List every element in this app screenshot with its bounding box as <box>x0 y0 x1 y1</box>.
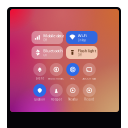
staticText: NFC <box>70 77 75 80</box>
button[interactable]: Location <box>31 84 48 101</box>
button[interactable]: Nearby <box>64 84 81 101</box>
button[interactable]: Mobile data <box>31 31 63 44</box>
button[interactable]: Hotspot <box>48 84 64 101</box>
staticText: Nearby <box>68 98 77 101</box>
button[interactable]: Record <box>81 84 97 101</box>
button[interactable]: Auto-rotate <box>48 63 64 80</box>
button[interactable]: NFC <box>64 63 81 80</box>
staticText: On <box>43 53 47 57</box>
button[interactable]: Screen cast <box>81 63 97 80</box>
button[interactable]: Wi-Fi <box>66 31 97 44</box>
staticText: Mobile data <box>43 33 64 38</box>
button[interactable]: Flashlight <box>66 46 97 59</box>
staticText: Bluetooth <box>43 48 63 53</box>
staticText: Silent <box>36 77 44 80</box>
staticText: Linksys <box>78 38 86 42</box>
staticText: Screen cast <box>82 77 96 80</box>
button[interactable]: Silent <box>31 63 48 80</box>
staticText: Off <box>43 38 47 42</box>
staticText: Off <box>78 53 82 57</box>
button[interactable]: Bluetooth <box>31 46 63 59</box>
staticText: Flashlight <box>78 48 97 53</box>
staticText: Record <box>84 98 94 101</box>
staticText: Auto-rotate <box>48 77 64 80</box>
staticText: Hotspot <box>51 98 62 101</box>
staticText: Location <box>34 98 45 101</box>
staticText: Wi-Fi <box>78 33 87 38</box>
